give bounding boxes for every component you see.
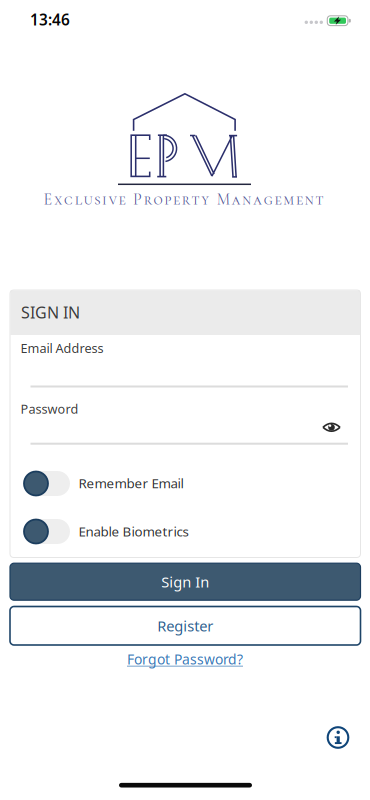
staticText: Exclusive Property Management bbox=[43, 190, 323, 209]
button[interactable]: Forgot Password? bbox=[127, 650, 243, 668]
staticText: Password bbox=[20, 400, 78, 417]
button[interactable]: Register bbox=[10, 606, 360, 645]
button[interactable]: Remember Email bbox=[23, 471, 70, 496]
button[interactable]: Show Password bbox=[318, 414, 344, 440]
staticText: 13:46 bbox=[30, 9, 70, 30]
staticText: Register bbox=[157, 616, 213, 635]
staticText: Remember Email bbox=[78, 474, 183, 492]
staticText: Email Address bbox=[20, 340, 103, 357]
staticText: Enable Biometrics bbox=[78, 522, 188, 540]
staticText: Forgot Password? bbox=[127, 650, 243, 668]
button[interactable]: Enable Biometrics bbox=[23, 519, 70, 544]
staticText: Sign In bbox=[161, 572, 209, 591]
button[interactable]: Information bbox=[323, 722, 353, 752]
staticText: SIGN IN bbox=[21, 302, 80, 323]
button[interactable]: Sign In bbox=[10, 563, 360, 600]
